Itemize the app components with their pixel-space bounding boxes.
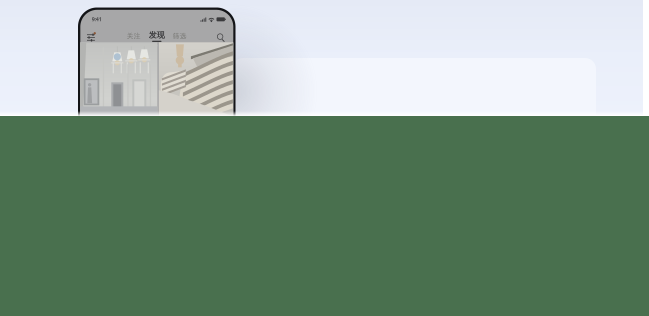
button[interactable]: Search — [213, 29, 229, 45]
button[interactable]: 发现 — [145, 29, 168, 44]
button[interactable]: 筛选 — [168, 30, 191, 43]
button[interactable]: 关注 — [122, 30, 145, 43]
staticText: 筛选 — [173, 32, 187, 40]
staticText: 9:41 — [92, 16, 102, 23]
staticText: 发现 — [149, 30, 165, 40]
staticText: 关注 — [127, 32, 141, 40]
button[interactable]: Filters — [84, 29, 100, 45]
